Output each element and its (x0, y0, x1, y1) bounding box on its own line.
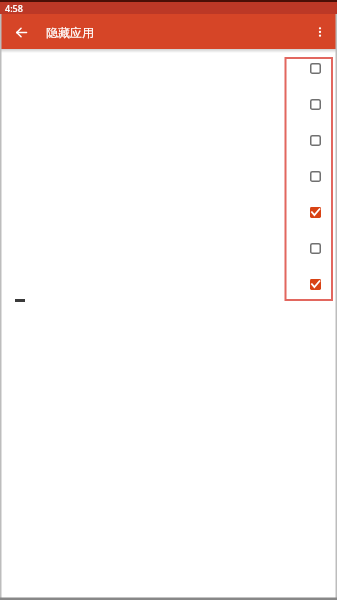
button[interactable]: App visible (0, 158, 337, 194)
button[interactable]: Back (8, 19, 34, 45)
staticText: 4:58 (5, 2, 23, 14)
button[interactable]: App visible (0, 122, 337, 158)
staticText: 隐藏应用 (46, 25, 94, 40)
button[interactable]: App visible (0, 86, 337, 122)
button[interactable]: App hidden (0, 266, 337, 302)
button[interactable]: More options (302, 14, 337, 49)
button[interactable]: App hidden (0, 194, 337, 230)
button[interactable]: App visible (0, 230, 337, 266)
button[interactable]: App visible (0, 50, 337, 86)
